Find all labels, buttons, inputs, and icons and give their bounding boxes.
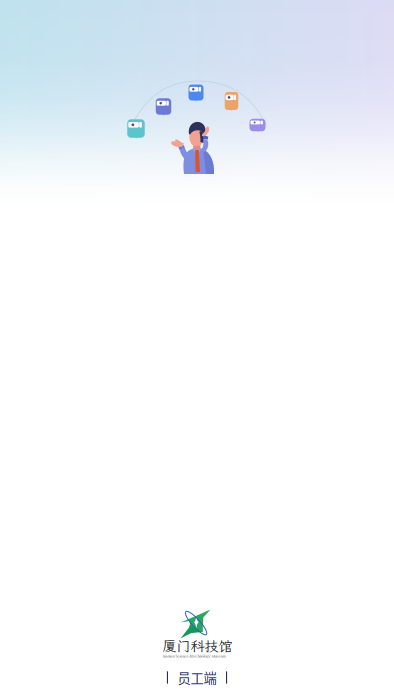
staticText: Xiamen Science &Technology Museum — [162, 653, 225, 658]
staticText: 厦门科技馆 — [162, 637, 232, 655]
staticText: 员工端 — [177, 668, 216, 687]
